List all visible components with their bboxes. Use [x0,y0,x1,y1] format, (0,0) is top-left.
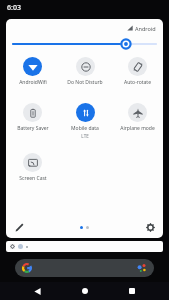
button[interactable]: AndroidWifi [6,54,59,86]
button[interactable]: Back [26,282,48,300]
button[interactable]: Google Search [15,259,154,277]
staticText: LTE [81,133,89,139]
other: Google Search [22,263,32,273]
button[interactable]: Screen Cast [6,150,59,182]
button[interactable]: Do Not Disturb [59,54,111,86]
staticText: AndroidWifi [19,79,47,86]
button[interactable]: Settings [141,218,159,236]
button[interactable]: Recent apps [121,282,143,300]
staticText: Screen Cast [19,175,47,182]
button[interactable]: Battery Saver [6,100,59,132]
staticText: Android [135,25,156,32]
staticText: 6:03 [7,3,21,13]
button[interactable]: Home [74,282,96,300]
button[interactable]: Edit tiles [10,218,28,236]
staticText: Battery Saver [17,125,49,132]
button[interactable]: Brightness [6,37,163,51]
staticText: Airplane mode [120,125,155,132]
staticText: Do Not Disturb [67,79,103,86]
button[interactable]: Airplane mode [111,100,163,132]
staticText: Auto-rotate [124,79,151,86]
other: Google Assistant [137,263,147,273]
staticText: Mobile data [71,125,99,132]
button[interactable] [6,241,163,252]
button[interactable]: Mobile data [59,100,111,139]
button[interactable]: Auto-rotate [111,54,163,86]
